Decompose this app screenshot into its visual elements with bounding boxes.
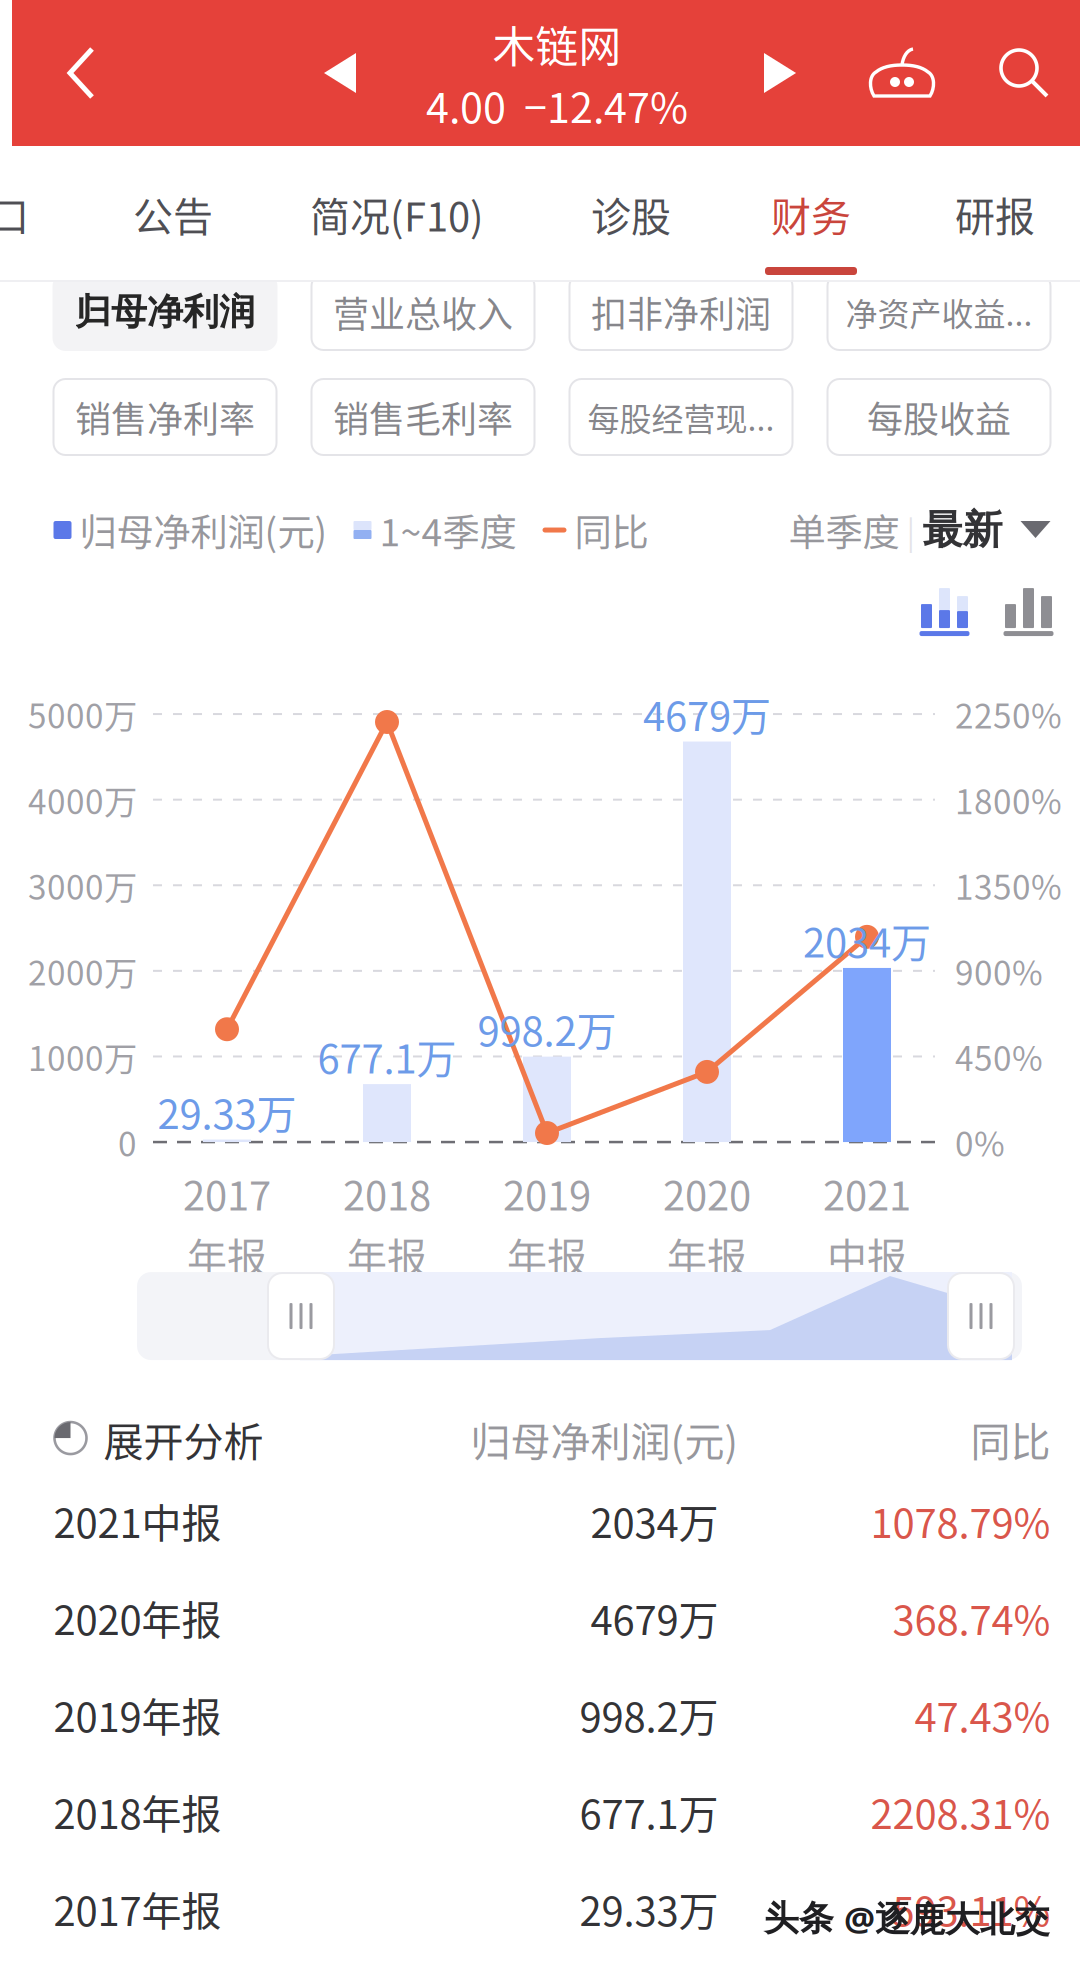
button[interactable]: 柱状图 (1001, 587, 1055, 637)
button[interactable]: 诊股 (526, 146, 736, 282)
staticText: 口 (0, 185, 29, 243)
staticText: 47.43% (914, 1686, 1050, 1743)
staticText: 销售毛利率 (333, 391, 513, 443)
staticText: 5000万 (28, 690, 137, 738)
staticText: 29.33万 (579, 1880, 718, 1937)
staticText: 2020 (663, 1164, 751, 1222)
staticText: 年报 (507, 1226, 587, 1284)
staticText: 1000万 (28, 1032, 137, 1081)
button[interactable]: 2018年报 (6, 1763, 1080, 1860)
staticText: 同比 (970, 1410, 1050, 1468)
staticText: 归母净利润(元) (71, 503, 327, 557)
staticText: 29.33万 (157, 1083, 296, 1140)
staticText: 木链网 (492, 13, 621, 75)
staticText: 2021中报 (53, 1492, 221, 1549)
staticText: 研报 (955, 185, 1035, 243)
staticText: 2017 (183, 1164, 271, 1222)
staticText: 2034万 (590, 1492, 718, 1549)
button[interactable]: 展开分析 (53, 1402, 383, 1476)
staticText: 同比 (566, 503, 648, 557)
staticText: 营业总收入 (333, 286, 513, 338)
staticText: 2034万 (803, 911, 931, 969)
staticText: 1078.79% (870, 1492, 1050, 1549)
staticText: 2250% (955, 690, 1062, 738)
staticText: 每股经营现... (587, 394, 774, 440)
staticText: 2017年报 (53, 1880, 221, 1937)
staticText: 998.2万 (477, 1000, 616, 1058)
staticText: | (899, 507, 922, 553)
staticText: 2021 (823, 1164, 911, 1222)
staticText: 677.1万 (579, 1783, 718, 1840)
staticText: 头条 (764, 1897, 834, 1940)
button[interactable]: 调整区间 (948, 1273, 1014, 1359)
staticText: 2000万 (28, 947, 137, 995)
staticText: 公告 (133, 185, 213, 243)
staticText: 4.00 −12.47% (426, 75, 688, 135)
staticText: @逐鹿大北交 (844, 1895, 1050, 1942)
staticText: 2019 (503, 1164, 591, 1222)
staticText: 1800% (955, 775, 1062, 824)
button[interactable]: 公告 (78, 146, 268, 282)
staticText: 900% (955, 947, 1043, 995)
staticText: 1350% (955, 861, 1062, 909)
staticText: 展开分析 (103, 1410, 263, 1468)
staticText: 1~4季度 (371, 503, 516, 557)
staticText: 年报 (187, 1226, 267, 1284)
staticText: 扣非净利润 (591, 286, 771, 338)
staticText: 2020年报 (53, 1589, 221, 1646)
button[interactable]: 返回 (17, 0, 147, 146)
staticText: 归母净利润(元) (470, 1410, 738, 1468)
staticText: 财务 (771, 185, 851, 243)
staticText: 593.11% (892, 1880, 1050, 1937)
button[interactable]: 下一只 (720, 0, 840, 146)
staticText: 归母净利润 (75, 289, 255, 335)
staticText: 单季度 (788, 503, 899, 557)
button[interactable]: 调整区间 (268, 1273, 334, 1359)
button[interactable]: 智能助手 (842, 0, 962, 146)
button[interactable]: 营业总收入 (311, 274, 534, 350)
staticText: 450% (955, 1032, 1043, 1081)
staticText: 3000万 (28, 861, 137, 909)
button[interactable]: 搜索 (962, 0, 1080, 146)
staticText: 2018年报 (53, 1783, 221, 1840)
staticText: 2019年报 (53, 1686, 221, 1743)
button[interactable]: 净资产收益... (827, 274, 1050, 350)
button[interactable]: 2019年报 (6, 1666, 1080, 1763)
button[interactable]: 堆叠柱状图 (917, 587, 971, 637)
button[interactable]: 财务 (736, 146, 886, 282)
button[interactable]: 每股收益 (827, 379, 1050, 455)
button[interactable]: 扣非净利润 (569, 274, 792, 350)
button[interactable]: 2020年报 (6, 1569, 1080, 1666)
staticText: 0% (955, 1118, 1005, 1166)
staticText: 年报 (667, 1226, 747, 1284)
button[interactable]: 研报 (886, 146, 1080, 282)
button[interactable]: 口 (0, 146, 78, 282)
staticText: 998.2万 (579, 1686, 718, 1743)
button[interactable]: 销售净利率 (53, 379, 276, 455)
staticText: 每股收益 (867, 391, 1011, 443)
staticText: 4679万 (590, 1589, 718, 1646)
staticText: 年报 (347, 1226, 427, 1284)
button[interactable]: 上一只 (280, 0, 400, 146)
button[interactable]: 单季度 (788, 503, 1050, 557)
button[interactable]: 每股经营现... (569, 379, 792, 455)
staticText: 4679万 (643, 685, 771, 742)
button[interactable]: 2017年报 (6, 1860, 1080, 1957)
staticText: 诊股 (591, 185, 671, 243)
staticText: 2018 (343, 1164, 431, 1222)
button[interactable]: 销售毛利率 (311, 379, 534, 455)
button[interactable]: 2021中报 (6, 1472, 1080, 1569)
staticText: 净资产收益... (845, 289, 1032, 335)
staticText: 368.74% (892, 1589, 1050, 1646)
button[interactable]: 归母净利润 (53, 274, 276, 350)
staticText: 0 (118, 1118, 137, 1166)
staticText: 简况(F10) (310, 185, 484, 243)
staticText: 最新 (922, 505, 1002, 555)
staticText: 2208.31% (870, 1783, 1050, 1840)
staticText: 677.1万 (317, 1027, 456, 1085)
staticText: 销售净利率 (75, 391, 255, 443)
staticText: 4000万 (28, 775, 137, 824)
button[interactable]: 简况(F10) (268, 146, 526, 282)
staticText: 中报 (827, 1226, 907, 1284)
